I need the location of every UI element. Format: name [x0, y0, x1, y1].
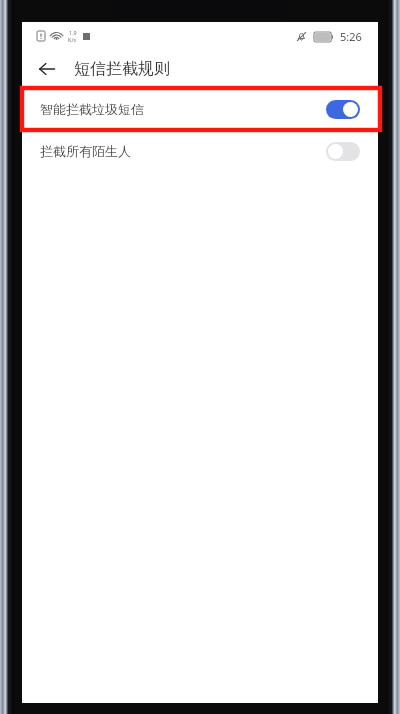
button[interactable]: 智能拦截垃圾短信 [22, 88, 378, 130]
staticText: 5:26 [340, 29, 362, 44]
staticText: 1.9 [69, 29, 77, 36]
button[interactable]: Off [326, 142, 360, 161]
staticText: 拦截所有陌生人 [40, 143, 326, 159]
button[interactable]: 拦截所有陌生人 [22, 130, 378, 172]
button[interactable]: On [326, 100, 360, 119]
button[interactable]: Back [28, 50, 66, 88]
staticText: K/s [68, 36, 77, 43]
staticText: 短信拦截规则 [74, 59, 170, 79]
staticText: 智能拦截垃圾短信 [40, 101, 326, 117]
